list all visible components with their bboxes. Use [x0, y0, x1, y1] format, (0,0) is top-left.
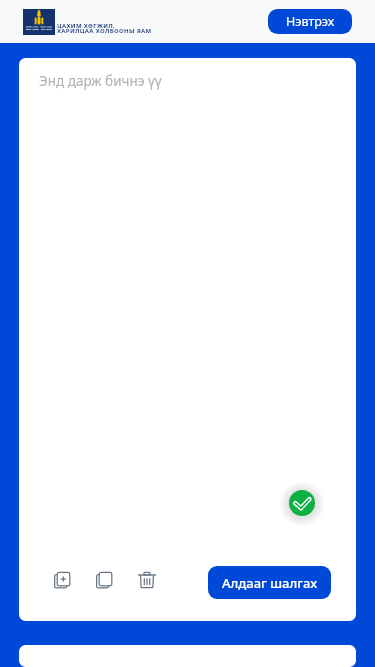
button[interactable]: Check spelling: [289, 490, 315, 516]
button[interactable]: Энд дарж бичнэ үү: [19, 58, 356, 548]
staticText: ЦАХИМ ХӨГЖИЛ,: [57, 22, 116, 30]
button[interactable]: Delete: [135, 569, 159, 593]
button[interactable]: Нэвтрэх: [268, 9, 352, 34]
staticText: Алдааг шалгах: [222, 574, 318, 592]
staticText: Нэвтрэх: [286, 13, 335, 30]
button[interactable]: Copy: [92, 569, 116, 593]
staticText: Энд дарж бичнэ үү: [39, 72, 162, 90]
button[interactable]: Paste: [50, 569, 74, 593]
staticText: ХАРИЛЦАА ХОЛБООНЫ ЯАМ: [57, 27, 152, 35]
button[interactable]: Алдааг шалгах: [208, 566, 331, 599]
